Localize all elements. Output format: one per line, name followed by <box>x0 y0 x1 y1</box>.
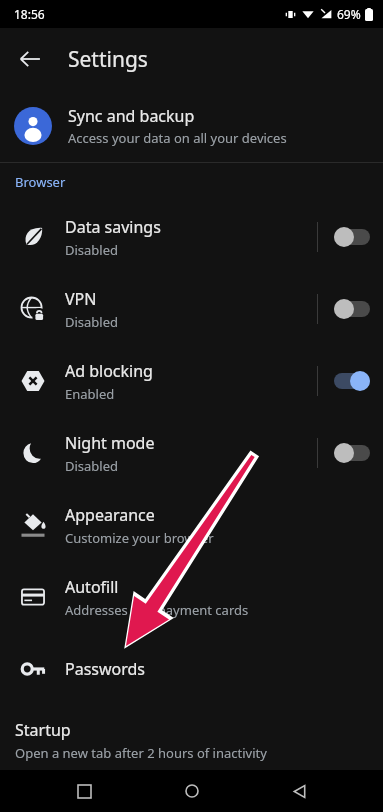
staticText: Sync and backup <box>68 105 195 127</box>
button[interactable]: Autofill <box>0 561 383 633</box>
staticText: Enabled <box>65 385 115 403</box>
staticText: Customize your browser <box>65 529 214 547</box>
staticText: 69% <box>337 6 361 22</box>
button[interactable]: VPN <box>0 273 383 345</box>
staticText: VPN <box>65 288 97 310</box>
staticText: Settings <box>68 45 148 74</box>
staticText: Startup <box>15 719 71 741</box>
staticText: Night mode <box>65 432 155 454</box>
staticText: Disabled <box>65 241 119 259</box>
button[interactable]: Recents <box>60 770 108 812</box>
button[interactable]: Night mode <box>0 417 383 489</box>
staticText: Addresses and payment cards <box>65 601 249 619</box>
staticText: Data savings <box>65 216 161 238</box>
button[interactable]: Back <box>275 770 323 812</box>
staticText: Ad blocking <box>65 360 153 382</box>
button[interactable]: Ad blocking <box>0 345 383 417</box>
button[interactable]: Passwords <box>0 633 383 705</box>
staticText: Access your data on all your devices <box>68 129 287 147</box>
staticText: 18:56 <box>14 6 45 22</box>
staticText: Appearance <box>65 504 155 526</box>
button[interactable]: Sync and backup <box>0 90 383 162</box>
button[interactable]: Data savings <box>0 201 383 273</box>
staticText: Disabled <box>65 457 119 475</box>
button[interactable]: Toggle Night mode <box>329 429 375 477</box>
button[interactable]: Back <box>8 37 52 81</box>
staticText: Browser <box>15 173 66 191</box>
button[interactable]: Toggle Ad blocking <box>329 357 375 405</box>
staticText: Open a new tab after 2 hours of inactivi… <box>15 744 267 762</box>
staticText: Disabled <box>65 313 119 331</box>
button[interactable]: Appearance <box>0 489 383 561</box>
staticText: Passwords <box>65 658 146 680</box>
button[interactable]: Home <box>168 770 216 812</box>
button[interactable]: Toggle Data savings <box>329 213 375 261</box>
button[interactable]: Toggle VPN <box>329 285 375 333</box>
staticText: Autofill <box>65 576 119 598</box>
button[interactable]: Startup <box>0 715 383 770</box>
